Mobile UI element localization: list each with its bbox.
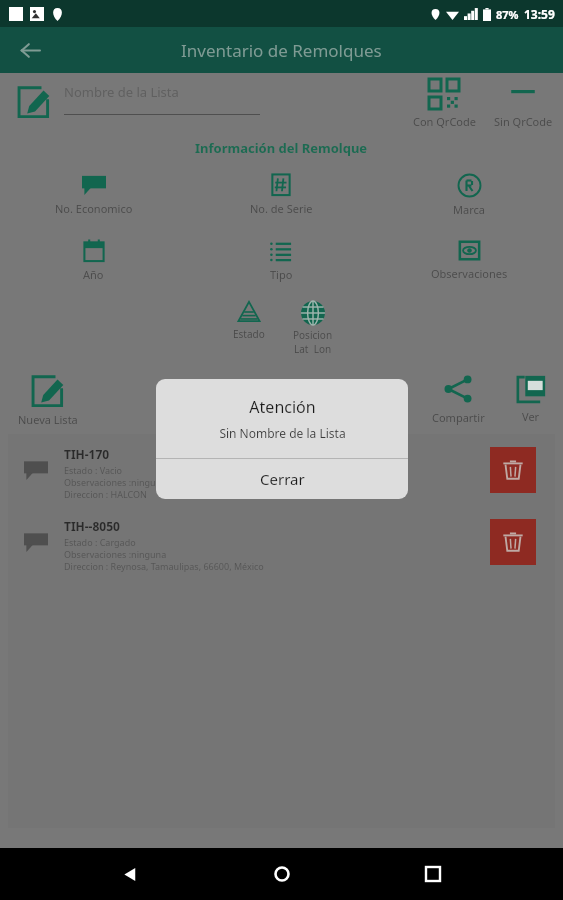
staticText: Direccion : HALCON: [64, 488, 147, 500]
button[interactable]: Recents: [411, 852, 455, 896]
staticText: Ver: [522, 409, 540, 424]
button[interactable]: Año: [0, 239, 187, 282]
staticText: 13:59: [524, 6, 555, 22]
button[interactable]: Marca: [375, 173, 563, 217]
button[interactable]: Editar nombre: [14, 82, 54, 122]
button[interactable]: TIH-170: [8, 434, 555, 506]
button[interactable]: Sin QrCode: [483, 79, 563, 129]
button[interactable]: Con QrCode: [405, 79, 483, 129]
button[interactable]: Compartir: [417, 370, 499, 425]
button[interactable]: Posicion: [280, 300, 346, 356]
staticText: Año: [83, 267, 104, 282]
button[interactable]: Estado: [218, 300, 280, 341]
staticText: No. Economico: [55, 201, 133, 216]
button[interactable]: Eliminar: [490, 519, 536, 565]
staticText: Compartir: [432, 410, 485, 425]
button[interactable]: Tipo: [187, 239, 375, 282]
staticText: TIH--8050: [64, 518, 120, 534]
staticText: Posicion: [293, 328, 333, 342]
button[interactable]: No. de Serie: [187, 173, 375, 216]
button[interactable]: TIH--8050: [8, 506, 555, 578]
staticText: Observaciones: [431, 266, 508, 281]
staticText: Nombre de la Lista: [64, 83, 179, 101]
staticText: Estado: [233, 327, 265, 341]
button[interactable]: Cerrar: [156, 459, 408, 499]
button[interactable]: Eliminar: [490, 447, 536, 493]
staticText: Tipo: [270, 267, 293, 282]
staticText: Estado : Cargado: [64, 536, 136, 548]
button[interactable]: Back: [108, 852, 152, 896]
staticText: Cerrar: [260, 469, 305, 489]
staticText: Estado : Vacio: [64, 464, 123, 476]
staticText: Sin QrCode: [494, 114, 553, 129]
staticText: Con QrCode: [413, 114, 476, 129]
staticText: Sin Nombre de la Lista: [219, 425, 346, 441]
staticText: Observaciones :ninguna: [64, 548, 167, 560]
button[interactable]: Nueva Lista: [8, 370, 88, 427]
staticText: Direccion : Reynosa, Tamaulipas, 66600, …: [64, 560, 264, 572]
button[interactable]: Home: [260, 852, 304, 896]
button[interactable]: Back: [10, 30, 50, 70]
staticText: Observaciones :ninguna: [64, 476, 167, 488]
staticText: 87%: [496, 7, 519, 22]
staticText: Nueva Lista: [18, 412, 78, 427]
staticText: Inventario de Remolques: [181, 39, 382, 62]
staticText: Lat Lon: [294, 342, 332, 356]
button[interactable]: Observaciones: [375, 239, 563, 281]
staticText: Marca: [453, 202, 485, 217]
button[interactable]: Ver: [499, 370, 563, 424]
staticText: No. de Serie: [250, 201, 313, 216]
staticText: Atención: [249, 396, 316, 418]
staticText: TIH-170: [64, 446, 110, 462]
button[interactable]: No. Economico: [0, 173, 187, 216]
staticText: Información del Remolque: [195, 139, 368, 157]
